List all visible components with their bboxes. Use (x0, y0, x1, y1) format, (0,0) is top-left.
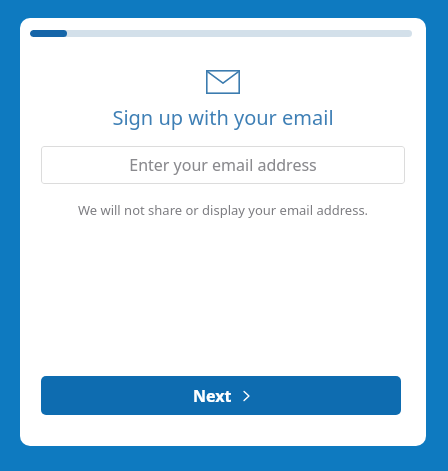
staticText: Enter your email address (129, 154, 317, 176)
other: Email (206, 70, 240, 94)
button[interactable]: Enter your email address (41, 146, 405, 184)
staticText: Next (193, 385, 232, 407)
staticText: Sign up with your email (20, 104, 426, 131)
staticText: We will not share or display your email … (20, 201, 426, 219)
button[interactable]: Next (41, 376, 401, 415)
